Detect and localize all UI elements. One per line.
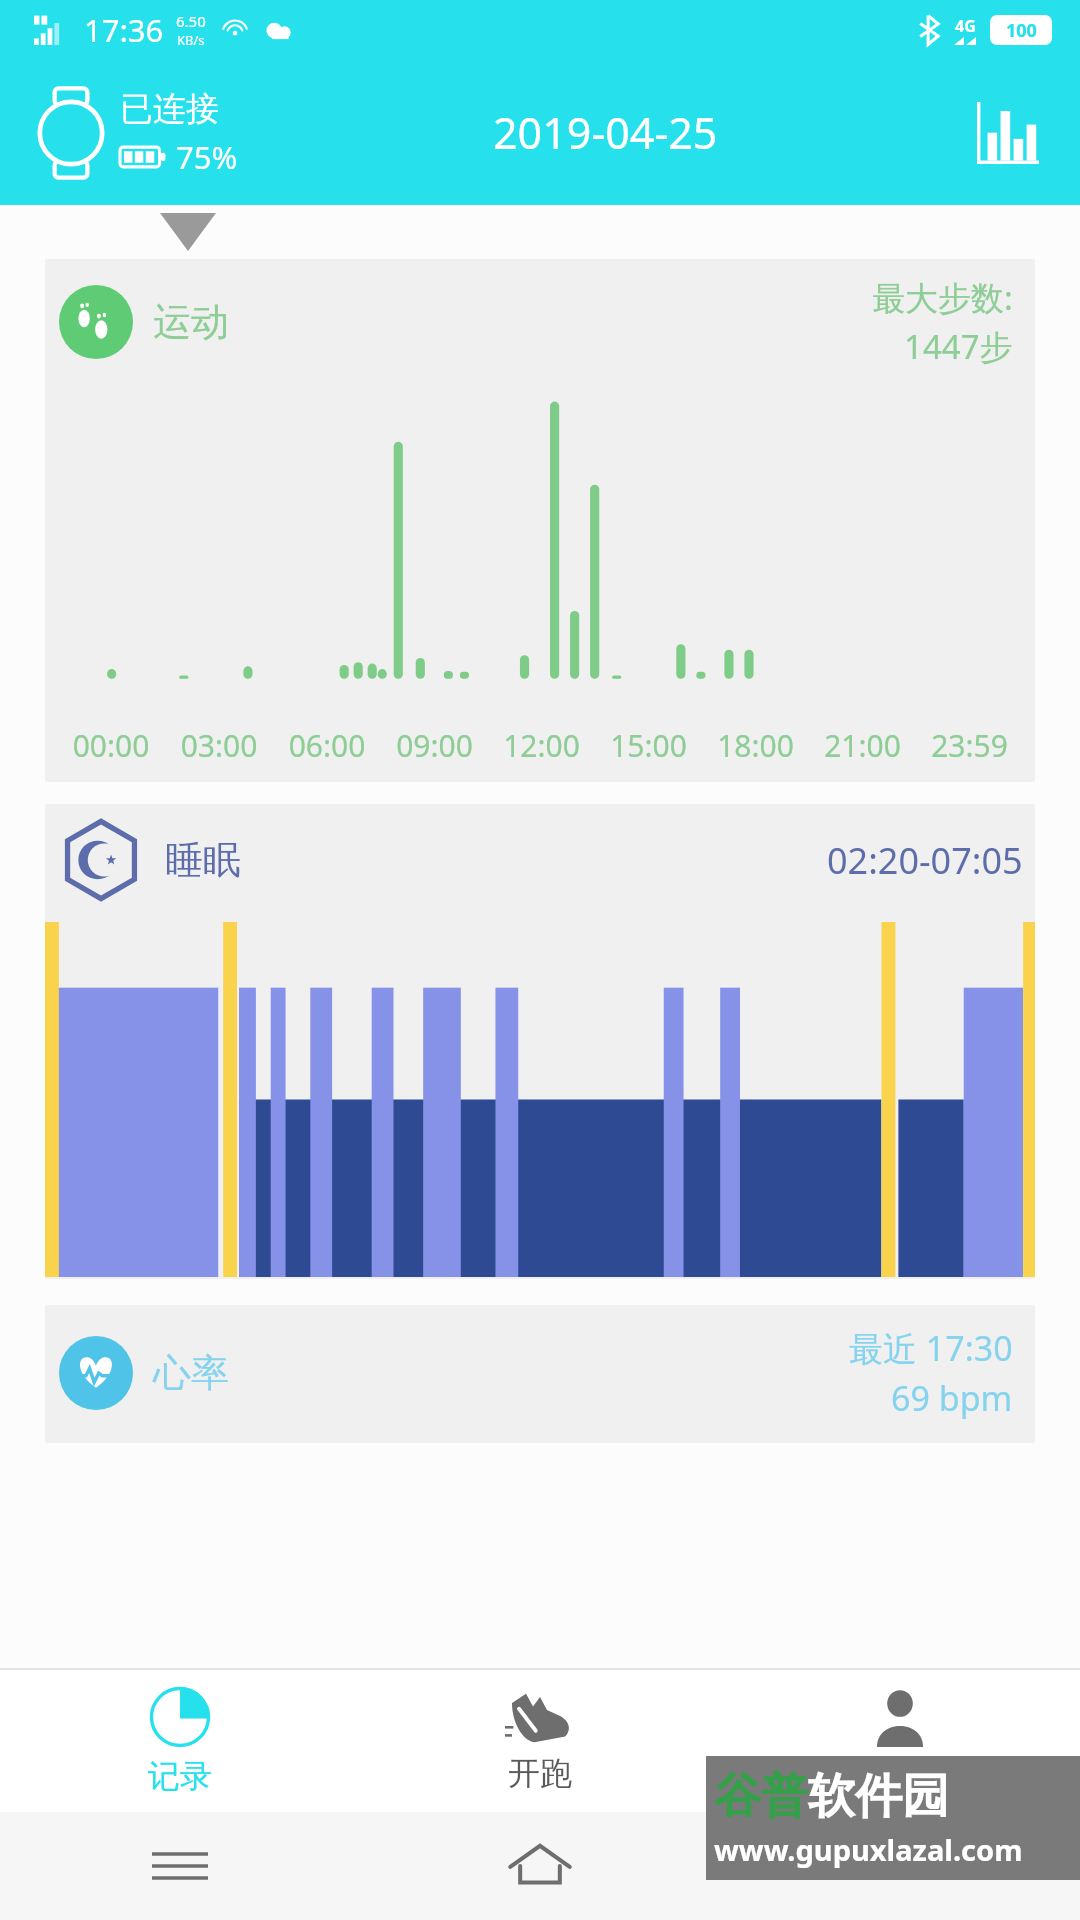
staticText: 最大步数: [872, 275, 1013, 320]
staticText: 06:00 [273, 725, 381, 766]
staticText: 17:36 [84, 9, 164, 51]
staticText: 03:00 [165, 725, 273, 766]
button[interactable]: 睡眠 [45, 804, 1035, 1279]
staticText: 4G [955, 15, 976, 37]
staticText: 69 bpm [891, 1375, 1013, 1421]
staticText: 100 [1006, 18, 1037, 43]
button[interactable]: 我的 [720, 1670, 1080, 1812]
staticText: 最近 17:30 [849, 1325, 1013, 1371]
staticText: 开跑 [508, 1753, 572, 1793]
staticText: 15:00 [595, 725, 702, 766]
staticText: 软件园 [808, 1767, 949, 1826]
button[interactable]: Home [360, 1812, 720, 1920]
staticText: 谷普 [714, 1767, 808, 1826]
staticText: 运动 [153, 298, 229, 346]
staticText: 21:00 [809, 725, 916, 766]
button[interactable]: 2019-04-25 [485, 95, 726, 170]
staticText: 心率 [153, 1349, 229, 1397]
button[interactable]: 已连接 [28, 81, 242, 185]
staticText: 记录 [148, 1756, 212, 1796]
staticText: 已连接 [120, 88, 219, 130]
staticText: KB/s [177, 31, 205, 49]
staticText: 18:00 [702, 725, 809, 766]
button[interactable]: Statistics [970, 95, 1046, 171]
staticText: 12:00 [488, 725, 595, 766]
staticText: 我的 [868, 1753, 932, 1793]
button[interactable]: Expand [160, 213, 216, 251]
button[interactable]: 记录 [0, 1670, 360, 1812]
staticText: 00:00 [57, 725, 165, 766]
staticText: 23:59 [916, 725, 1023, 766]
staticText: 1447步 [904, 324, 1013, 369]
button[interactable]: Menu [0, 1812, 360, 1920]
staticText: 6.50 [176, 11, 206, 31]
staticText: 02:20-07:05 [827, 836, 1023, 885]
button[interactable]: 开跑 [360, 1670, 720, 1812]
button[interactable]: 运动 [45, 259, 1035, 782]
staticText: 09:00 [381, 725, 488, 766]
staticText: 75% [176, 136, 238, 178]
staticText: 睡眠 [165, 836, 241, 884]
staticText: www.gupuxlazal.com [714, 1830, 1023, 1869]
button[interactable]: 心率 [45, 1305, 1035, 1443]
